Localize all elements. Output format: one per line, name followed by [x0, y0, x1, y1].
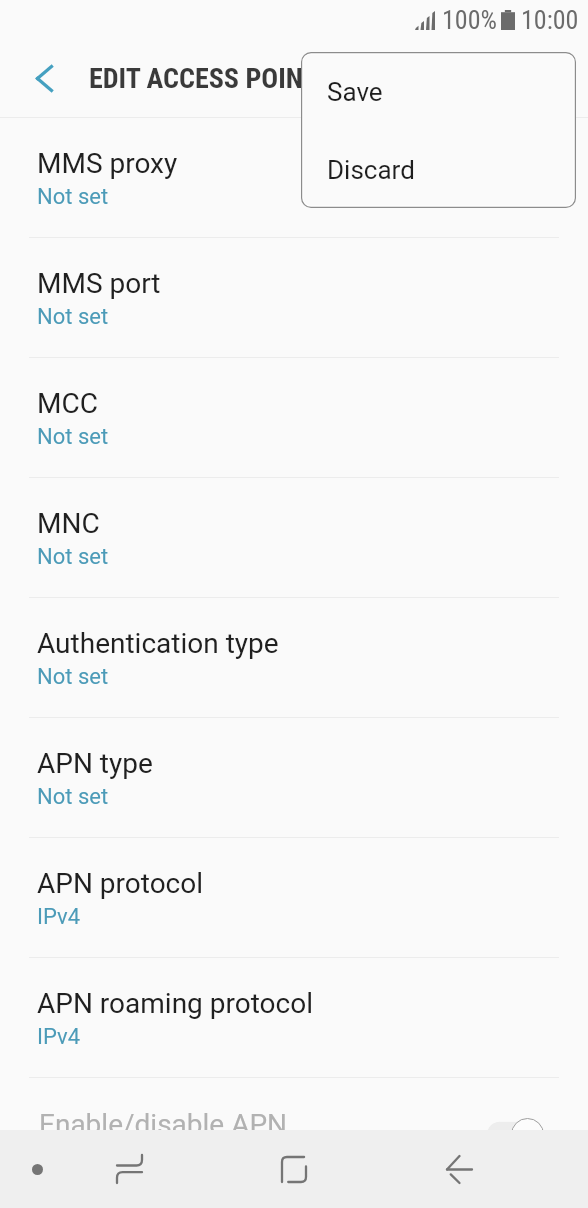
staticText: IPv4 [37, 904, 81, 930]
staticText: Not set [37, 304, 109, 330]
button[interactable]: APN type [0, 717, 588, 837]
button[interactable]: More options [0, 1130, 93, 1208]
button[interactable]: Back [403, 1130, 515, 1208]
staticText: APN protocol [37, 867, 204, 900]
button[interactable]: MCC [0, 357, 588, 477]
button[interactable]: MMS port [0, 237, 588, 357]
button[interactable]: Enable/disable APN [0, 1077, 588, 1130]
staticText: Not set [37, 544, 109, 570]
staticText: Save [327, 77, 383, 107]
staticText: MCC [37, 387, 98, 420]
staticText: Enable/disable APN [39, 1108, 288, 1141]
button[interactable]: MMS proxy [0, 117, 588, 237]
button[interactable]: Home [238, 1130, 350, 1208]
staticText: 10:00 [521, 5, 579, 35]
staticText: Not set [37, 184, 109, 210]
staticText: Authentication type [37, 627, 279, 660]
button[interactable]: Navigate up [16, 50, 72, 106]
button[interactable]: Recent apps [73, 1130, 185, 1208]
staticText: Discard [327, 155, 415, 185]
staticText: Not set [37, 424, 109, 450]
button[interactable]: Discard [301, 130, 576, 208]
staticText: EDIT ACCESS POINT [89, 62, 318, 95]
staticText: MMS proxy [37, 147, 178, 180]
staticText: MNC [37, 507, 100, 540]
staticText: APN type [37, 747, 153, 780]
staticText: Not set [37, 784, 109, 810]
button[interactable]: APN protocol [0, 837, 588, 957]
button[interactable]: MNC [0, 477, 588, 597]
staticText: IPv4 [37, 1024, 81, 1050]
button[interactable]: APN roaming protocol [0, 957, 588, 1077]
staticText: Not set [37, 664, 109, 690]
staticText: MMS port [37, 267, 161, 300]
button[interactable]: Authentication type [0, 597, 588, 717]
staticText: APN roaming protocol [37, 987, 313, 1020]
staticText: 100% [442, 5, 497, 35]
button[interactable]: Save [301, 52, 576, 130]
